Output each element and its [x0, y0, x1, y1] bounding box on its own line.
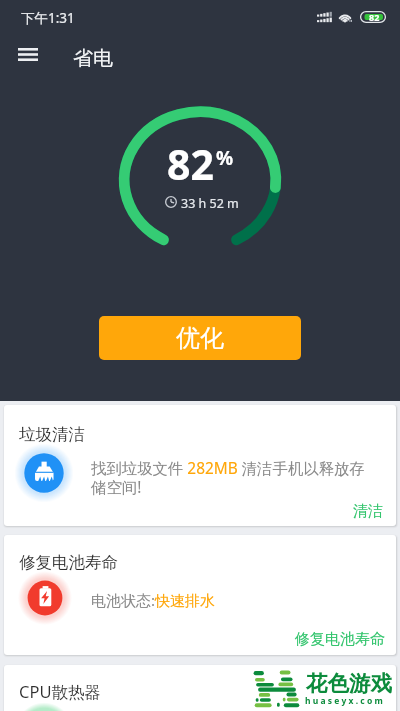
staticText: 82: [167, 136, 214, 192]
staticText: 下午1:31: [21, 9, 75, 27]
staticText: %: [216, 145, 234, 171]
staticText: h u a s e y x . c o m: [305, 695, 383, 707]
staticText: 修复电池寿命: [295, 630, 385, 649]
staticText: 花色游戏: [306, 670, 392, 697]
staticText: 清洁: [353, 502, 383, 521]
staticText: 优化: [176, 323, 224, 353]
staticText: 垃圾清洁: [19, 424, 85, 445]
staticText: 找到垃圾文件 282MB 清洁手机以释放存储空间!: [91, 458, 372, 497]
staticText: 修复电池寿命: [19, 552, 118, 573]
staticText: CPU散热器: [19, 680, 101, 703]
staticText: 电池状态:快速排水: [91, 590, 216, 610]
staticText: 33 h 52 m: [181, 195, 239, 212]
staticText: 82: [369, 11, 380, 23]
button[interactable]: 优化: [99, 316, 301, 360]
button[interactable]: 修复电池寿命: [4, 535, 396, 655]
button[interactable]: 垃圾清洁: [4, 405, 396, 526]
button[interactable]: Menu: [4, 34, 52, 74]
staticText: 省电: [73, 46, 113, 71]
button[interactable]: CPU散热器: [4, 665, 396, 711]
